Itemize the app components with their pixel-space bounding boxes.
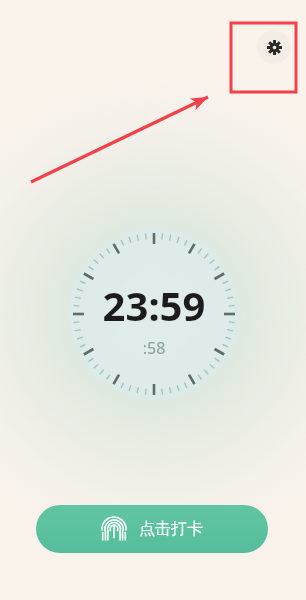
button[interactable]: 点击打卡 [36,505,268,553]
button[interactable]: Settings [257,30,291,64]
staticText: 点击打卡 [139,519,203,539]
staticText: :58 [68,337,240,359]
staticText: 23:59 [68,278,240,332]
